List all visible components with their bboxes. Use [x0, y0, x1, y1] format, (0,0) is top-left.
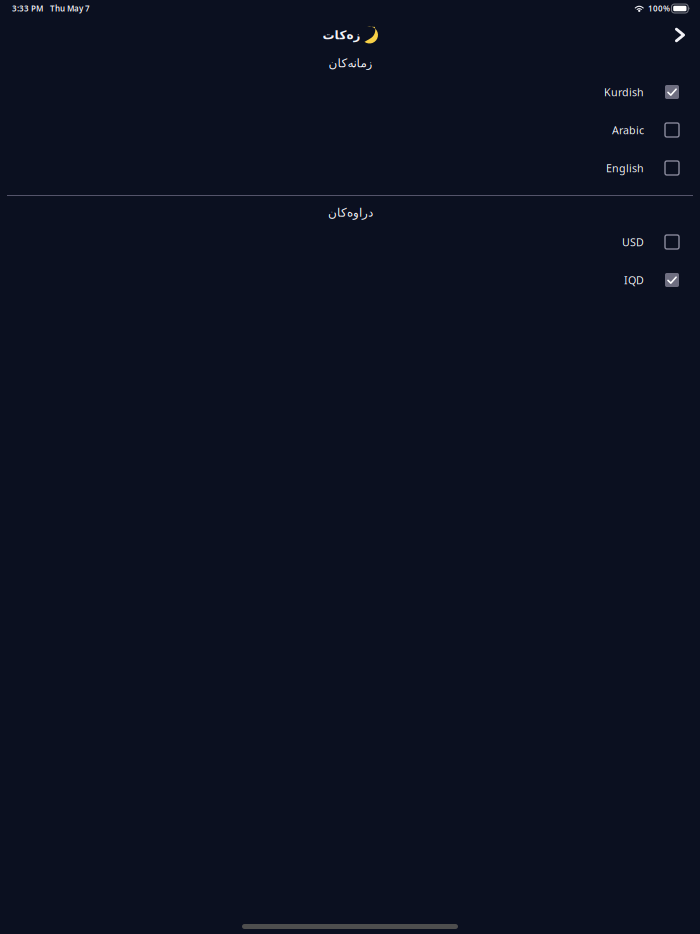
- staticText: دراوەکان: [327, 206, 372, 219]
- staticText: زمانەکان: [328, 56, 372, 70]
- staticText: 100%: [648, 3, 670, 14]
- staticText: USD: [622, 235, 644, 249]
- button[interactable]: Next: [667, 21, 693, 49]
- staticText: Kurdish: [604, 85, 644, 99]
- button[interactable]: USD: [0, 223, 700, 261]
- button[interactable]: Kurdish: [0, 73, 700, 111]
- staticText: Thu May 7: [50, 3, 90, 14]
- staticText: IQD: [624, 273, 644, 287]
- staticText: زەکات: [322, 28, 360, 42]
- button[interactable]: Arabic: [0, 111, 700, 149]
- staticText: Arabic: [612, 123, 644, 137]
- staticText: 3:33 PM: [12, 3, 43, 14]
- staticText: English: [606, 161, 644, 175]
- button[interactable]: English: [0, 149, 700, 187]
- button[interactable]: IQD: [0, 261, 700, 299]
